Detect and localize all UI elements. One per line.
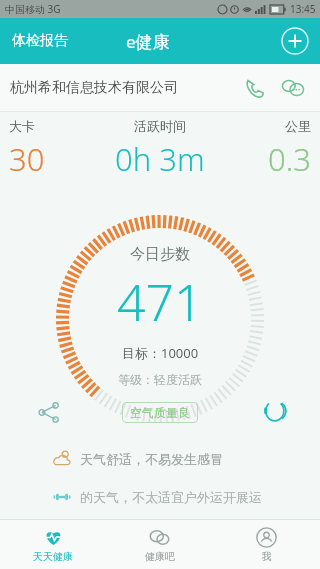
button[interactable]: 活跃时间 (100, 118, 220, 180)
staticText: 体检报告 (12, 32, 68, 50)
button[interactable]: 空气质量良 (122, 402, 198, 423)
button[interactable]: Chat (276, 71, 310, 105)
button[interactable]: Share (32, 395, 66, 429)
staticText: 目标：10000 (122, 344, 199, 362)
button[interactable]: Watch device (256, 393, 292, 429)
button[interactable]: Call (238, 71, 272, 105)
staticText: 健康吧 (145, 550, 175, 563)
button[interactable]: 健康吧 (106, 520, 213, 569)
staticText: 等级：轻度活跃 (118, 372, 202, 387)
button[interactable]: 天天健康 (0, 520, 106, 569)
staticText: 我 (262, 550, 272, 563)
button[interactable]: 体检报告 (0, 24, 80, 58)
staticText: 的天气，不太适宜户外运开展运 (80, 489, 262, 505)
staticText: 天天健康 (33, 550, 73, 563)
staticText: 大卡 (9, 118, 35, 134)
staticText: 天气舒适，不易发生感冒 (80, 451, 223, 467)
button[interactable]: Add (280, 26, 310, 56)
staticText: 杭州希和信息技术有限公司 (10, 79, 178, 97)
button[interactable]: 的天气，不太适宜户外运开展运 (52, 487, 262, 507)
button[interactable]: 公里 (220, 118, 320, 180)
staticText: 中国移动 3G (5, 2, 61, 16)
staticText: 空气质量良 (130, 405, 190, 420)
button[interactable]: 天气舒适，不易发生感冒 (52, 449, 223, 469)
staticText: 30 (9, 138, 45, 180)
staticText: e健康 (126, 30, 170, 53)
button[interactable]: 大卡 (0, 118, 100, 180)
staticText: 471 (117, 268, 203, 336)
staticText: 13:45 (290, 2, 316, 16)
staticText: 公里 (285, 118, 311, 134)
button[interactable]: 我 (213, 520, 320, 569)
staticText: 今日步数 (130, 245, 190, 264)
staticText: 活跃时间 (134, 118, 186, 134)
staticText: 0h 3m (115, 138, 205, 180)
staticText: 0.3 (268, 138, 311, 180)
